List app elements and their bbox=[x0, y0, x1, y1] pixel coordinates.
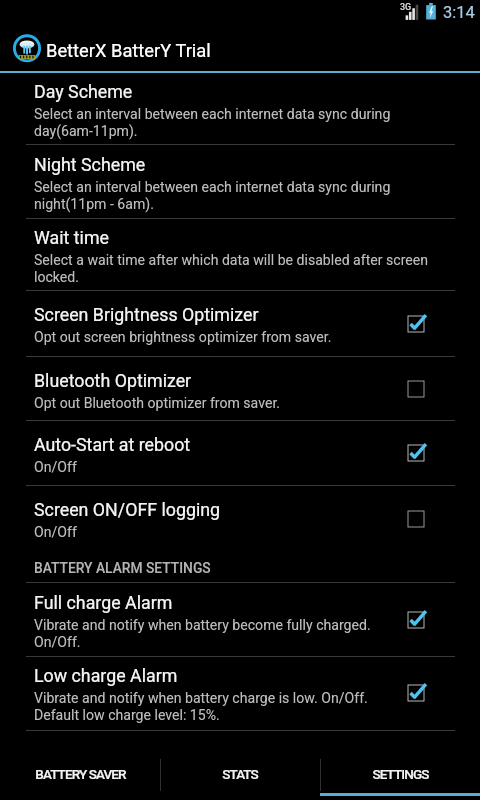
staticText: BATTERY ALARM SETTINGS bbox=[34, 560, 211, 576]
staticText: STATS bbox=[222, 766, 258, 782]
staticText: Wait time bbox=[34, 227, 109, 248]
button[interactable]: Toggle Screen Brightness Optimizer bbox=[352, 291, 480, 356]
button[interactable]: Screen ON/OFF logging bbox=[0, 486, 480, 551]
staticText: Select an interval between each internet… bbox=[34, 179, 391, 213]
button[interactable]: Auto-Start at reboot bbox=[0, 421, 480, 485]
staticText: Opt out Bluetooth optimizer from saver. bbox=[34, 395, 281, 412]
button[interactable]: Screen Brightness Optimizer bbox=[0, 291, 480, 356]
staticText: Screen ON/OFF logging bbox=[34, 499, 221, 520]
button[interactable]: Toggle Low charge Alarm bbox=[352, 657, 480, 729]
staticText: SETTINGS bbox=[372, 766, 429, 782]
staticText: On/Off bbox=[34, 459, 77, 476]
staticText: Auto-Start at reboot bbox=[34, 434, 191, 455]
button[interactable]: Toggle Screen ON/OFF logging bbox=[352, 486, 480, 551]
button[interactable]: BATTERY SAVER bbox=[0, 746, 160, 800]
staticText: Vibrate and notify when battery become f… bbox=[34, 617, 371, 651]
staticText: BetterX BatterY Trial bbox=[46, 40, 211, 61]
button[interactable]: Night Scheme bbox=[0, 145, 480, 218]
staticText: 3:14 bbox=[443, 3, 475, 22]
button[interactable]: Low charge Alarm bbox=[0, 657, 480, 729]
button[interactable]: STATS bbox=[160, 746, 320, 800]
button[interactable]: Toggle Auto-Start at reboot bbox=[352, 421, 480, 485]
button[interactable]: Day Scheme bbox=[0, 73, 480, 144]
staticText: Day Scheme bbox=[34, 81, 133, 102]
staticText: Vibrate and notify when battery charge i… bbox=[34, 690, 368, 724]
staticText: BATTERY SAVER bbox=[35, 766, 126, 782]
staticText: Opt out screen brightness optimizer from… bbox=[34, 329, 332, 346]
staticText: Bluetooth Optimizer bbox=[34, 370, 192, 391]
staticText: Screen Brightness Optimizer bbox=[34, 304, 259, 325]
button[interactable]: Full charge Alarm bbox=[0, 583, 480, 657]
button[interactable]: Toggle Bluetooth Optimizer bbox=[352, 357, 480, 421]
staticText: On/Off bbox=[34, 524, 77, 541]
staticText: Select a wait time after which data will… bbox=[34, 252, 429, 286]
button[interactable]: Wait time bbox=[0, 219, 480, 291]
staticText: Select an interval between each internet… bbox=[34, 106, 391, 140]
staticText: Night Scheme bbox=[34, 154, 146, 175]
button[interactable]: SETTINGS bbox=[320, 746, 480, 800]
staticText: 3G bbox=[400, 2, 412, 13]
button[interactable]: Bluetooth Optimizer bbox=[0, 357, 480, 421]
staticText: Full charge Alarm bbox=[34, 592, 173, 613]
button[interactable]: Toggle Full charge Alarm bbox=[352, 583, 480, 657]
staticText: Low charge Alarm bbox=[34, 665, 178, 686]
